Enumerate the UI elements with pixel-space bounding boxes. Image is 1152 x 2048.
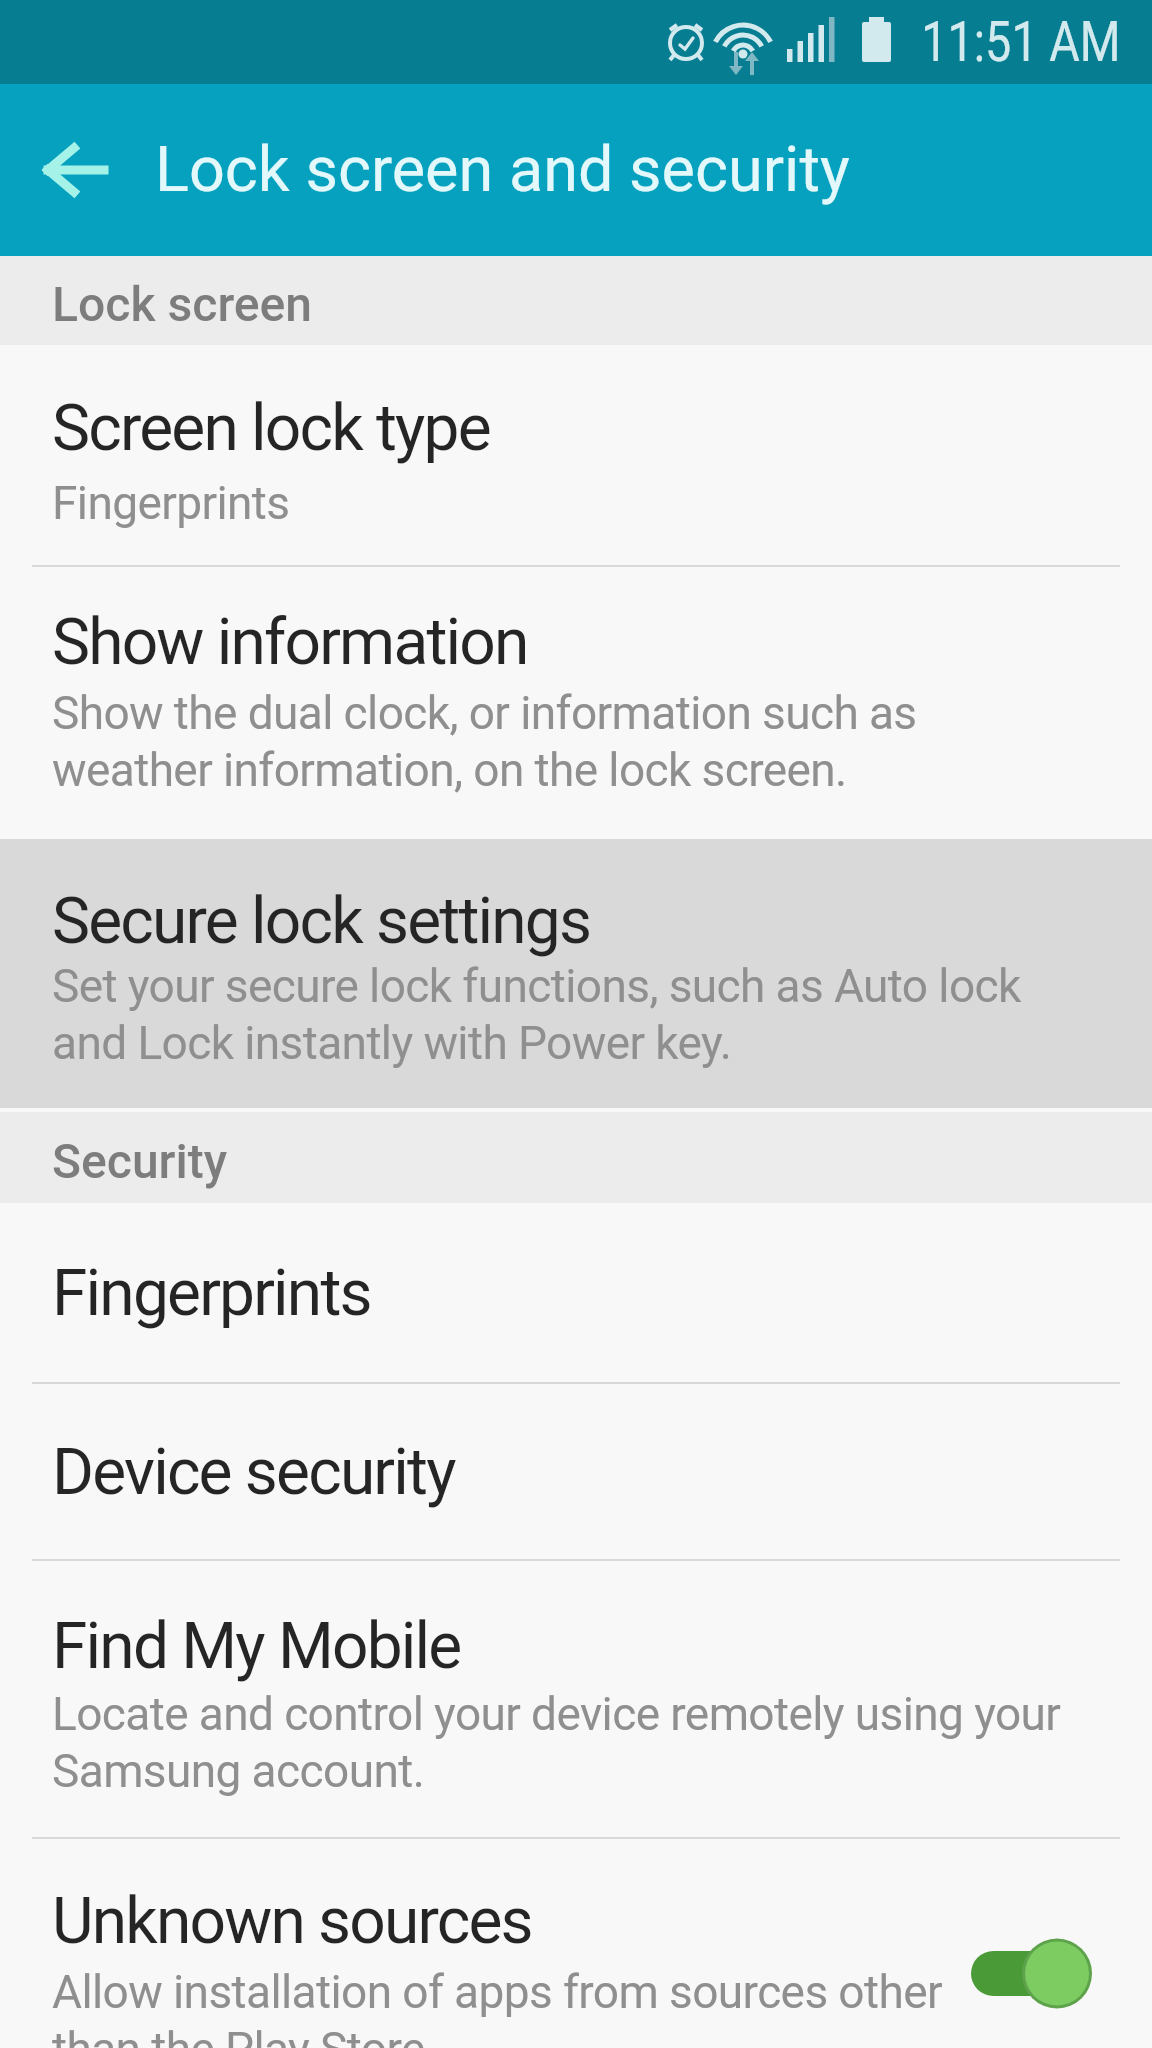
button[interactable]: Unknown sources [0,1839,1152,2048]
staticText: Set your secure lock functions, such as … [52,959,1021,1070]
staticText: Show the dual clock, or information such… [52,686,917,797]
button[interactable]: Find My Mobile [0,1561,1152,1839]
staticText: Screen lock type [52,391,490,466]
button[interactable]: Device security [0,1384,1152,1561]
staticText: Secure lock settings [52,884,591,959]
button[interactable]: Secure lock settings [0,839,1152,1108]
staticText: Device security [52,1435,455,1510]
button[interactable]: Show information [0,567,1152,839]
staticText: Security [52,1133,228,1189]
staticText: Show information [52,605,528,680]
button[interactable] [30,125,120,215]
staticText: Allow installation of apps from sources … [52,1965,942,2048]
button[interactable] [971,1935,1095,2013]
button[interactable]: Screen lock type [0,345,1152,567]
staticText: Fingerprints [52,1256,371,1331]
staticText: Find My Mobile [52,1609,461,1684]
staticText: 11:51 AM [921,10,1121,74]
staticText: Lock screen and security [155,133,850,207]
button[interactable]: Fingerprints [0,1203,1152,1384]
staticText: Fingerprints [52,476,290,530]
staticText: Locate and control your device remotely … [52,1687,1061,1798]
staticText: Unknown sources [52,1884,532,1959]
staticText: Lock screen [52,276,313,332]
